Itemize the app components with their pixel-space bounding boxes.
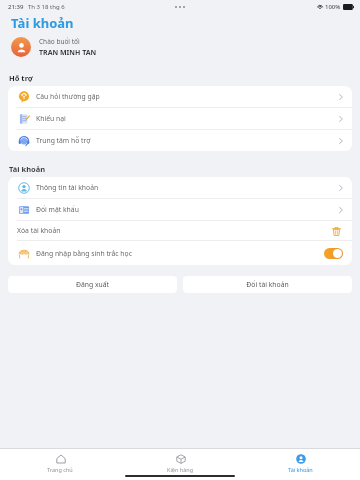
staticText: Đăng nhập bằng sinh trắc học [36,249,132,258]
staticText: Tài khoản [288,466,313,473]
button[interactable]: Chào buổi tối [0,32,360,62]
button[interactable]: Trung tâm hỗ trợ [8,130,352,151]
staticText: TRAN MINH TAN [39,48,97,58]
staticText: Hỗ trợ [9,73,33,83]
button[interactable]: Trang chủ [0,449,120,480]
button[interactable]: Tài khoản [240,449,360,480]
staticText: Đổi tài khoản [246,280,289,289]
button[interactable]: Đăng xuất [8,276,177,293]
button[interactable]: Xóa tài khoản [8,221,352,240]
button[interactable]: Đổi tài khoản [183,276,352,293]
staticText: Tài khoản [11,14,74,32]
button[interactable]: Đăng nhập bằng sinh trắc học [8,241,352,265]
staticText: Th 3 18 thg 6 [28,3,65,11]
button[interactable]: Thông tin tài khoản [8,177,352,198]
button[interactable]: Đăng nhập bằng sinh trắc học [324,248,343,259]
staticText: Kiện hàng [167,466,194,473]
staticText: 100% [325,3,341,11]
staticText: Trang chủ [47,466,73,473]
staticText: Đăng xuất [76,280,109,289]
staticText: Khiếu nại [36,114,66,123]
staticText: 21:39 [8,3,24,11]
staticText: Chào buổi tối [39,37,80,46]
button[interactable]: Xóa tài khoản [329,224,343,238]
button[interactable]: Kiện hàng [120,449,240,480]
staticText: Xóa tài khoản [17,226,61,235]
button[interactable]: Câu hỏi thường gặp [8,86,352,107]
button[interactable]: Khiếu nại [8,108,352,129]
staticText: Câu hỏi thường gặp [36,92,100,101]
staticText: Đổi mật khẩu [36,205,79,214]
button[interactable]: Đổi mật khẩu [8,199,352,220]
staticText: Thông tin tài khoản [36,183,99,192]
staticText: Tài khoản [9,164,46,174]
staticText: Trung tâm hỗ trợ [36,136,91,145]
